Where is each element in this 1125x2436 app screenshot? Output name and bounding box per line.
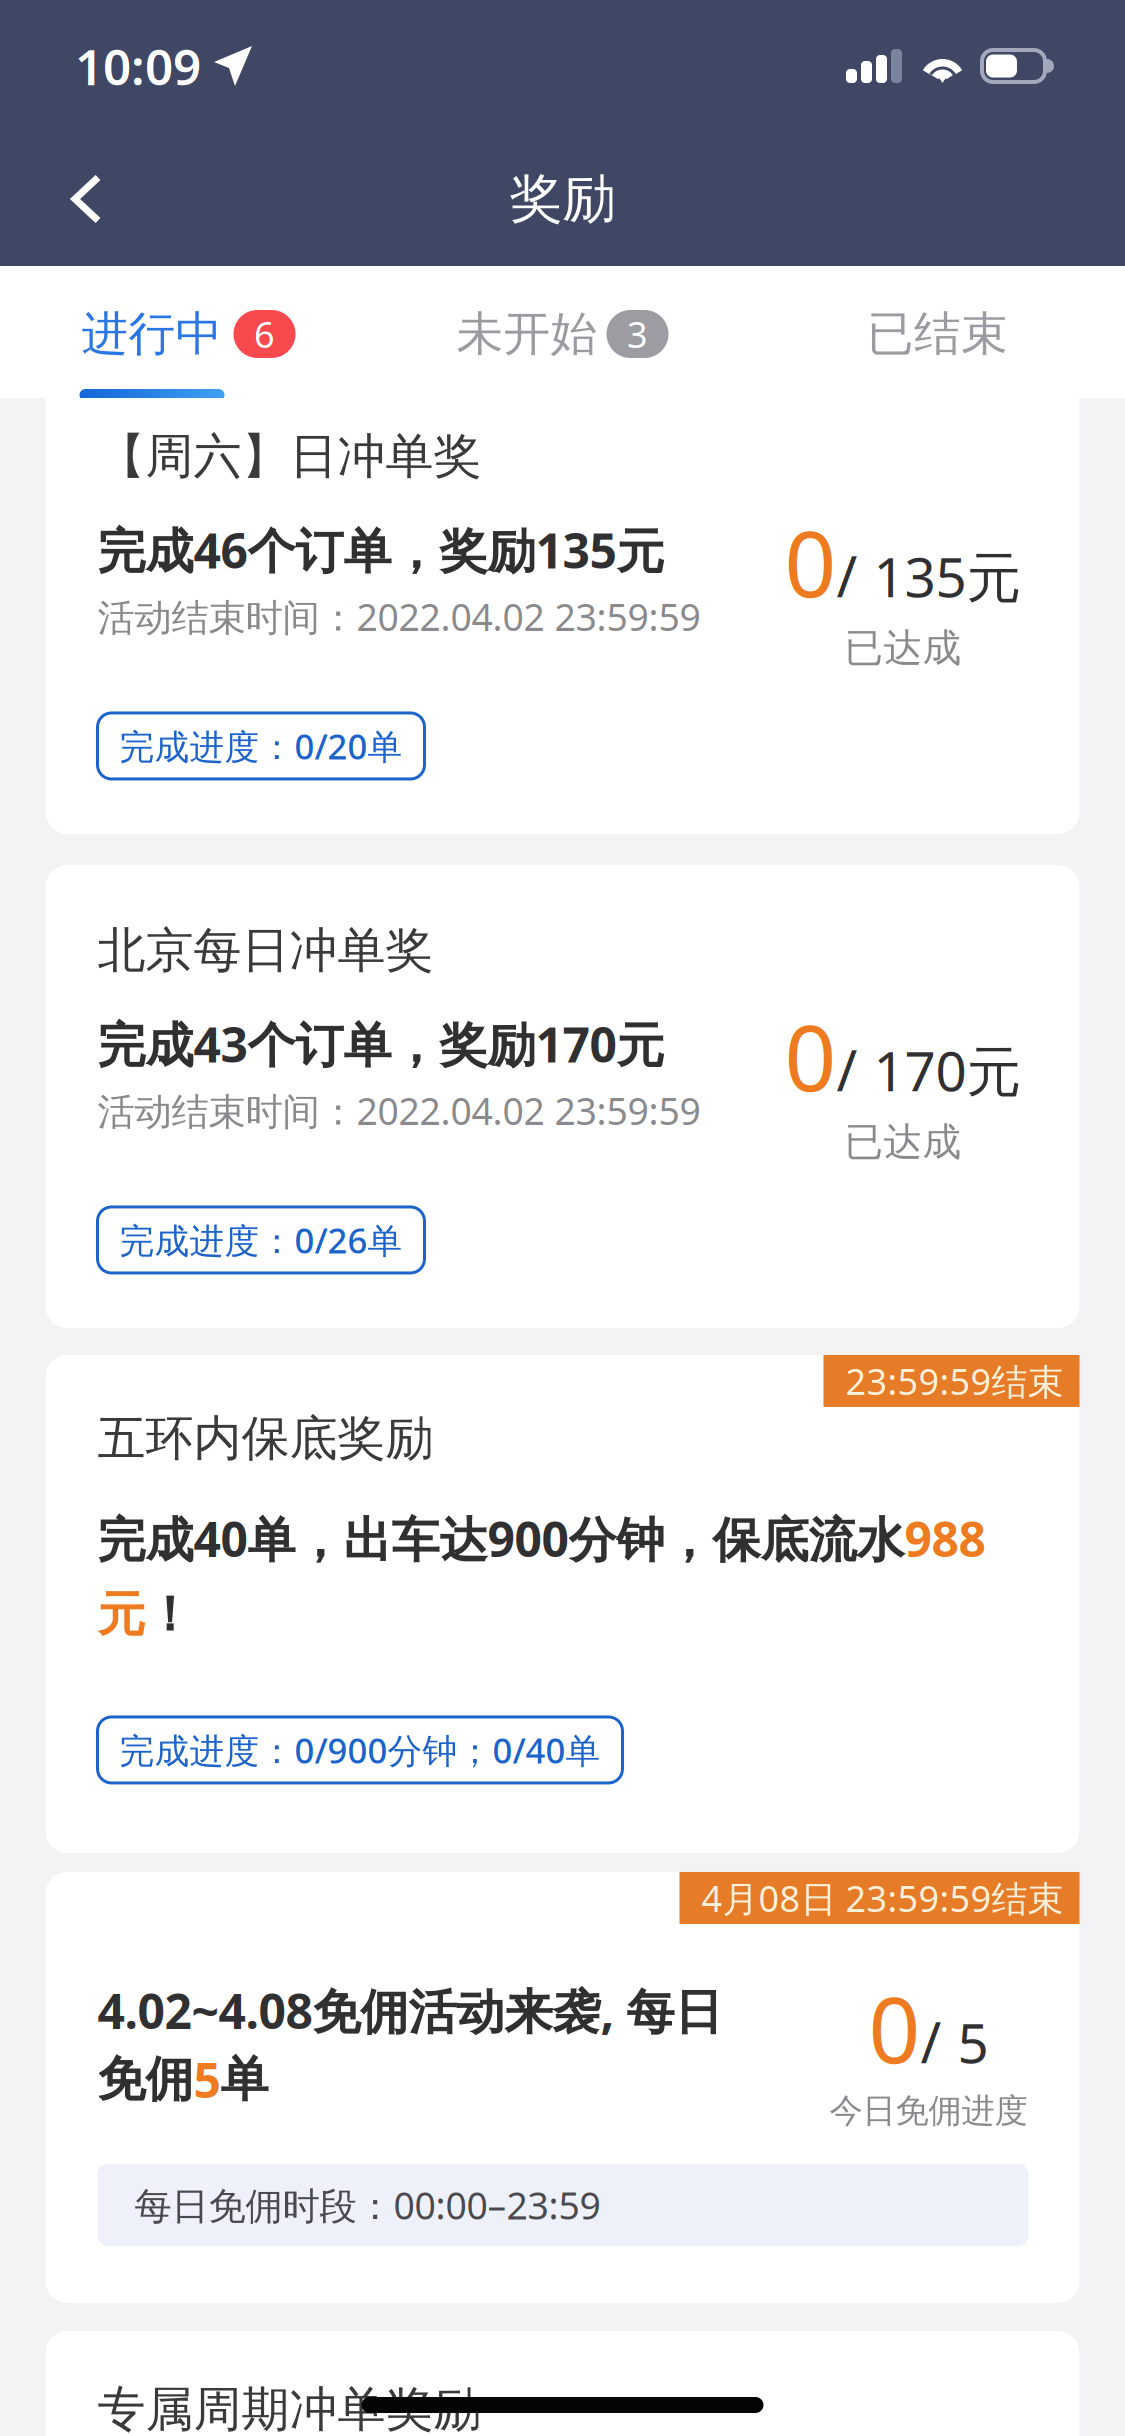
staticText: 免佣 (97, 2050, 193, 2109)
staticText: 0 (784, 502, 836, 622)
staticText: ！ (145, 1585, 193, 1644)
staticText: 6 (254, 310, 275, 358)
staticText: 进行中 (81, 305, 222, 363)
staticText: 4月08日 23:59:59结束 (701, 1874, 1063, 1922)
staticText: 4.02~4.08免佣活动来袭, 每日 (97, 1979, 722, 2042)
staticText: 活动结束时间：2022.04.02 23:59:59 (97, 592, 700, 641)
staticText: 专属周期冲单奖励 (97, 2380, 481, 2436)
staticText: 单 (220, 2050, 268, 2109)
staticText: 今日免佣进度 (829, 2090, 1027, 2131)
button[interactable]: 已结束 (750, 263, 1125, 401)
staticText: 五环内保底奖励 (97, 1409, 433, 1468)
staticText: 5 (193, 2048, 220, 2111)
staticText: 5 (957, 2006, 988, 2078)
staticText: 完成40单，出车达900分钟，保底流水 (97, 1507, 904, 1570)
staticText: 完成进度：0/900分钟；0/40单 (119, 1727, 600, 1773)
staticText: 3 (627, 310, 648, 358)
staticText: 已达成 (844, 1118, 961, 1166)
staticText: 135元 (873, 540, 1021, 612)
staticText: 170元 (873, 1034, 1021, 1106)
staticText: 完成43个订单，奖励170元 (97, 1012, 664, 1076)
staticText: / (920, 2004, 941, 2079)
button[interactable]: 23:59:59结束 (45, 1355, 1079, 1853)
staticText: 活动结束时间：2022.04.02 23:59:59 (97, 1086, 700, 1135)
button[interactable]: 进行中 (0, 263, 375, 401)
staticText: 23:59:59结束 (845, 1357, 1063, 1405)
staticText: 10:09 (75, 33, 201, 99)
button[interactable]: 专属周期冲单奖励 (45, 2331, 1079, 2436)
staticText: 元 (97, 1585, 145, 1644)
staticText: 北京每日冲单奖 (97, 921, 433, 980)
staticText: / (836, 538, 857, 613)
button[interactable]: 【周六】日冲单奖 (45, 371, 1079, 834)
staticText: 每日免佣时段：00:00–23:59 (134, 2180, 600, 2230)
staticText: 完成进度：0/20单 (119, 723, 402, 769)
button[interactable]: 未开始 (375, 263, 750, 401)
button[interactable]: 4月08日 23:59:59结束 (45, 1872, 1079, 2303)
staticText: / (836, 1032, 857, 1107)
staticText: 完成46个订单，奖励135元 (97, 518, 664, 582)
button[interactable]: 北京每日冲单奖 (45, 865, 1079, 1328)
staticText: 【周六】日冲单奖 (97, 427, 481, 486)
staticText: 0 (784, 996, 836, 1116)
staticText: 988 (904, 1507, 985, 1570)
staticText: 完成进度：0/26单 (119, 1217, 402, 1263)
staticText: 已达成 (844, 624, 961, 672)
staticText: 已结束 (867, 305, 1008, 363)
staticText: 0 (868, 1968, 920, 2088)
button[interactable]: 返回 (44, 139, 131, 258)
staticText: 未开始 (456, 305, 597, 363)
staticText: 奖励 (509, 166, 615, 232)
